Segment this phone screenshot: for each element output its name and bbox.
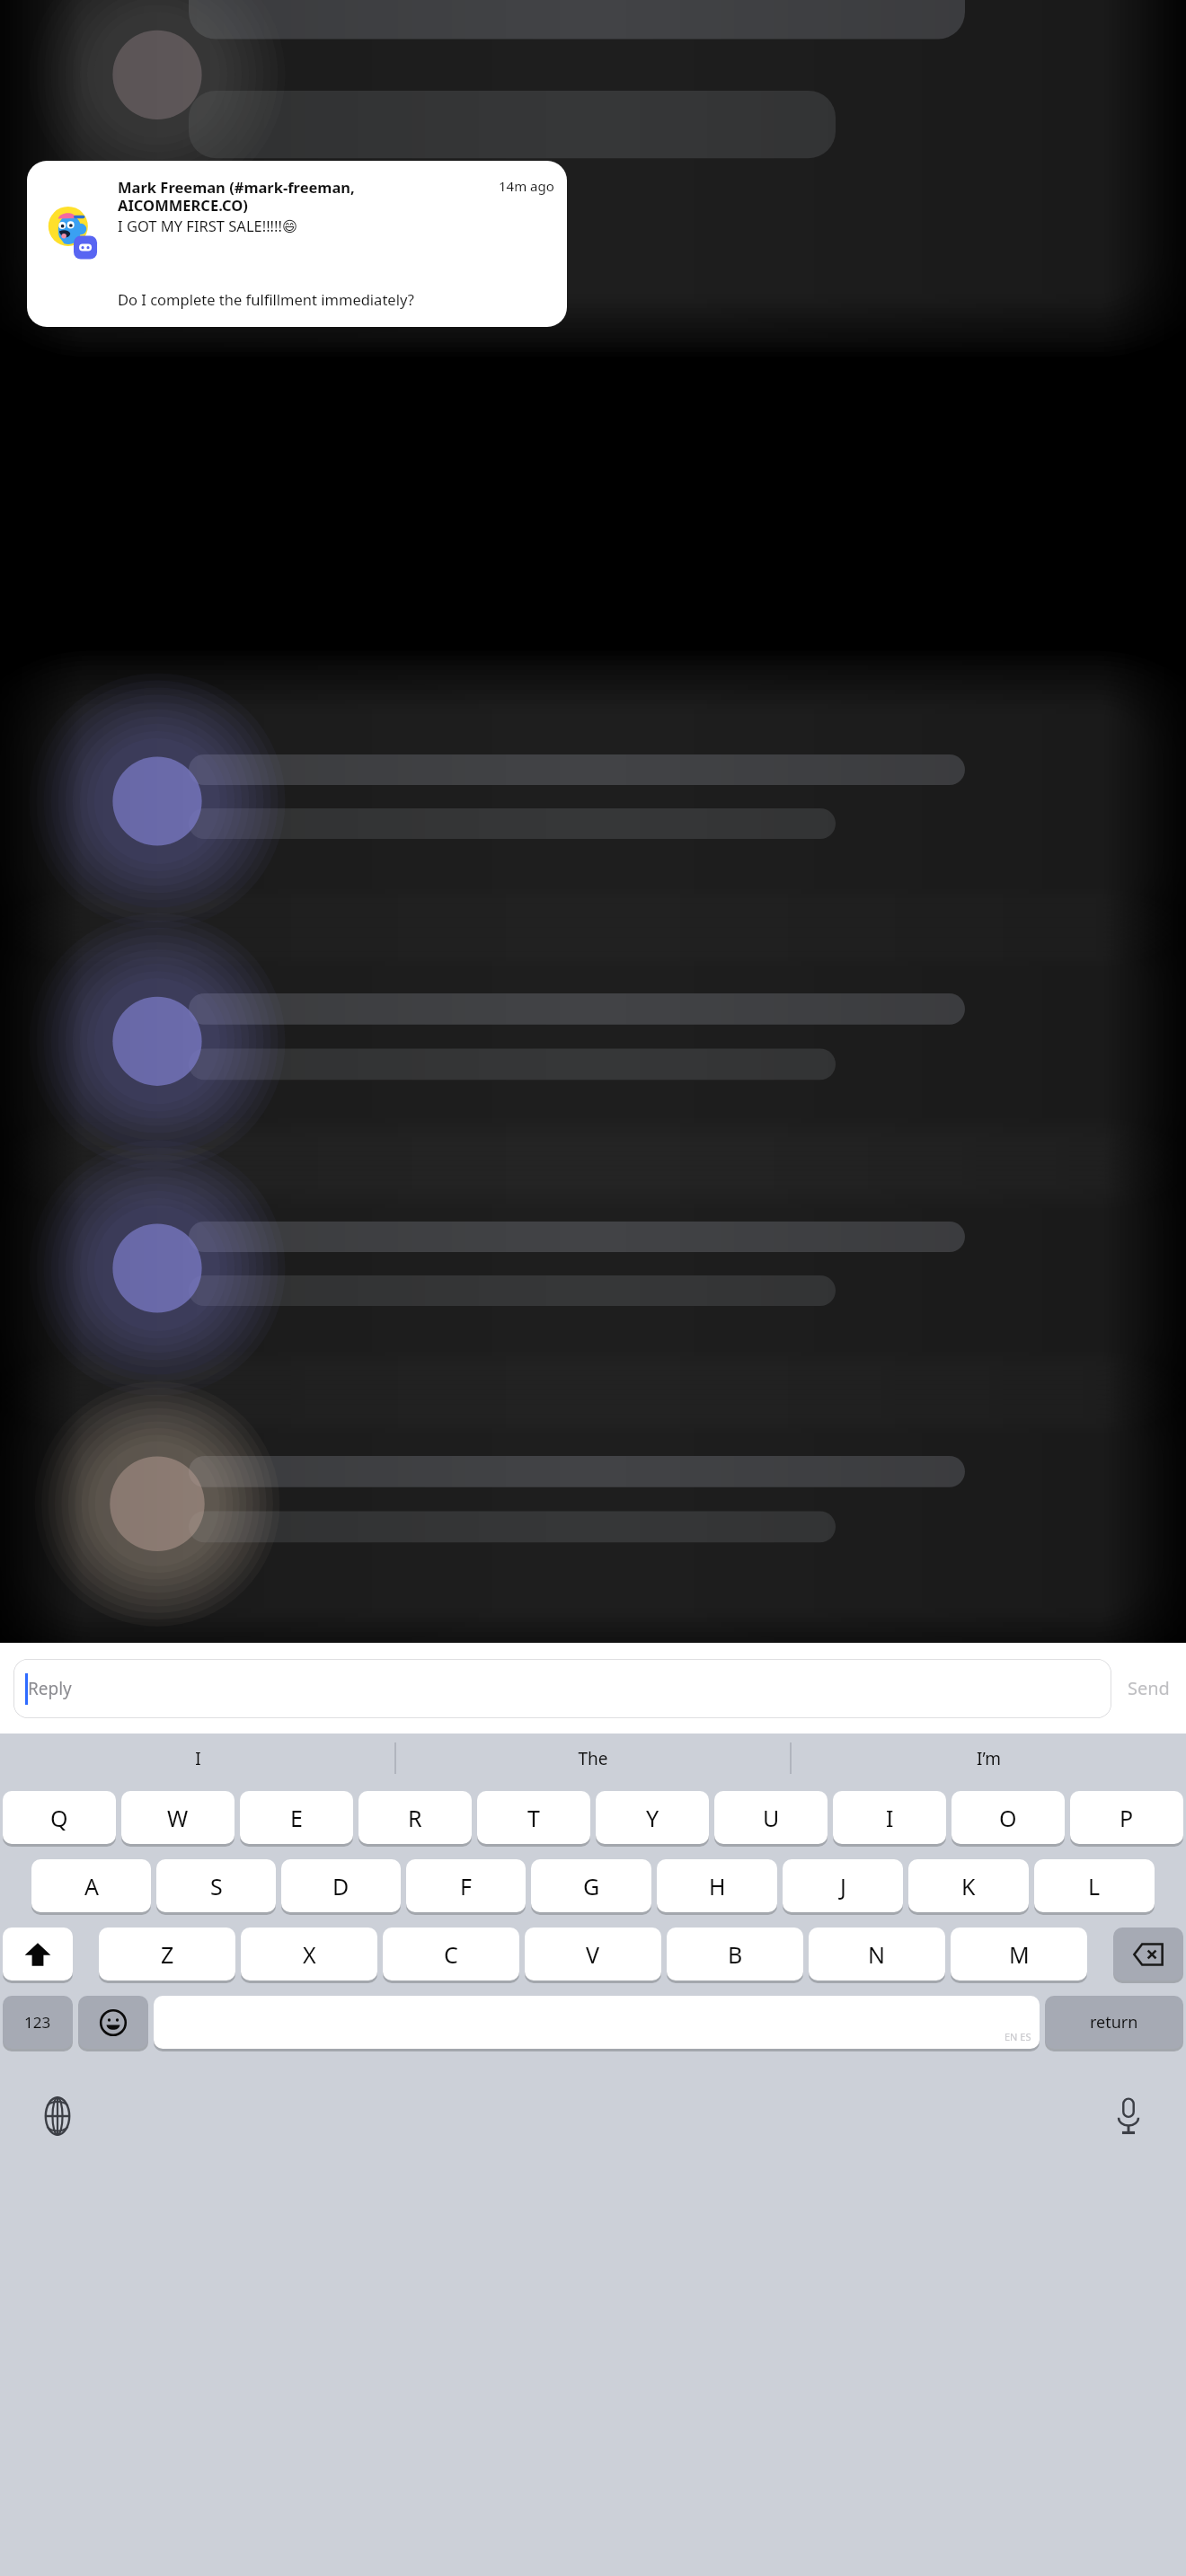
button[interactable]: T [477,1791,590,1844]
staticText: W [167,1803,189,1833]
button[interactable]: E [240,1791,353,1844]
button[interactable]: The [395,1734,791,1783]
staticText: T [527,1803,540,1833]
staticText: N [868,1939,886,1970]
button[interactable]: R [358,1791,472,1844]
staticText: Send [1128,1676,1170,1700]
button[interactable]: D [281,1859,401,1912]
button[interactable]: F [406,1859,526,1912]
button[interactable]: S [156,1859,276,1912]
button[interactable]: M [951,1928,1087,1981]
button[interactable]: Reply [13,1659,1111,1718]
staticText: B [728,1939,743,1970]
button[interactable]: Backspace [1113,1928,1183,1981]
button[interactable]: I [833,1791,946,1844]
staticText: I’m [977,1747,1001,1770]
button[interactable]: 123 [3,1996,73,2049]
staticText: Q [50,1803,68,1833]
staticText: D [332,1871,350,1901]
staticText: I GOT MY FIRST SALE!!!!!😄 [118,216,298,235]
staticText: H [709,1871,726,1901]
staticText: U [763,1803,780,1833]
button[interactable]: L [1034,1859,1155,1912]
staticText: L [1088,1871,1101,1901]
button[interactable]: H [657,1859,777,1912]
staticText: G [583,1871,600,1901]
staticText: I [195,1747,201,1770]
button[interactable]: Y [596,1791,709,1844]
staticText: Z [161,1939,174,1970]
button[interactable]: Dictation [1100,2087,1157,2145]
staticText: M [1009,1939,1030,1970]
button[interactable]: G [531,1859,651,1912]
button[interactable]: B [667,1928,803,1981]
button[interactable]: N [809,1928,945,1981]
button[interactable]: U [714,1791,828,1844]
button[interactable]: Shift [3,1928,73,1981]
staticText: K [961,1871,976,1901]
button[interactable]: C [383,1928,519,1981]
staticText: A [84,1871,99,1901]
staticText: F [460,1871,472,1901]
button[interactable]: Q [3,1791,116,1844]
staticText: P [1120,1803,1134,1833]
staticText: E [290,1803,303,1833]
staticText: C [444,1939,458,1970]
button[interactable]: W [121,1791,235,1844]
button[interactable]: Change keyboard language [29,2087,86,2145]
staticText: Do I complete the fulfillment immediatel… [118,289,414,309]
staticText: EN ES [1005,2030,1031,2043]
staticText: Y [646,1803,659,1833]
staticText: S [210,1871,223,1901]
staticText: return [1090,2011,1138,2033]
staticText: Reply [28,1677,72,1700]
staticText: V [586,1939,600,1970]
staticText: R [408,1803,422,1833]
button[interactable]: Space [154,1996,1040,2049]
button[interactable]: V [525,1928,661,1981]
staticText: J [840,1871,846,1901]
button[interactable]: A [31,1859,151,1912]
button[interactable]: P [1070,1791,1183,1844]
staticText: I [886,1803,894,1833]
button[interactable]: J [783,1859,903,1912]
staticText: 14m ago [499,177,554,195]
button[interactable]: Mark Freeman (#mark-freeman, AICOMMERCE.… [27,161,567,327]
staticText: 123 [24,2012,51,2033]
staticText: X [303,1939,316,1970]
staticText: The [578,1747,608,1770]
staticText: O [999,1803,1017,1833]
button[interactable]: O [951,1791,1065,1844]
button[interactable]: I [0,1734,395,1783]
button[interactable]: I’m [791,1734,1186,1783]
button[interactable]: K [908,1859,1029,1912]
staticText: Mark Freeman (#mark-freeman, AICOMMERCE.… [118,177,499,216]
button[interactable]: Emoji [78,1996,148,2049]
button[interactable]: return [1045,1996,1183,2049]
button[interactable]: Z [99,1928,235,1981]
button[interactable]: Send [1128,1676,1170,1700]
button[interactable]: X [241,1928,377,1981]
